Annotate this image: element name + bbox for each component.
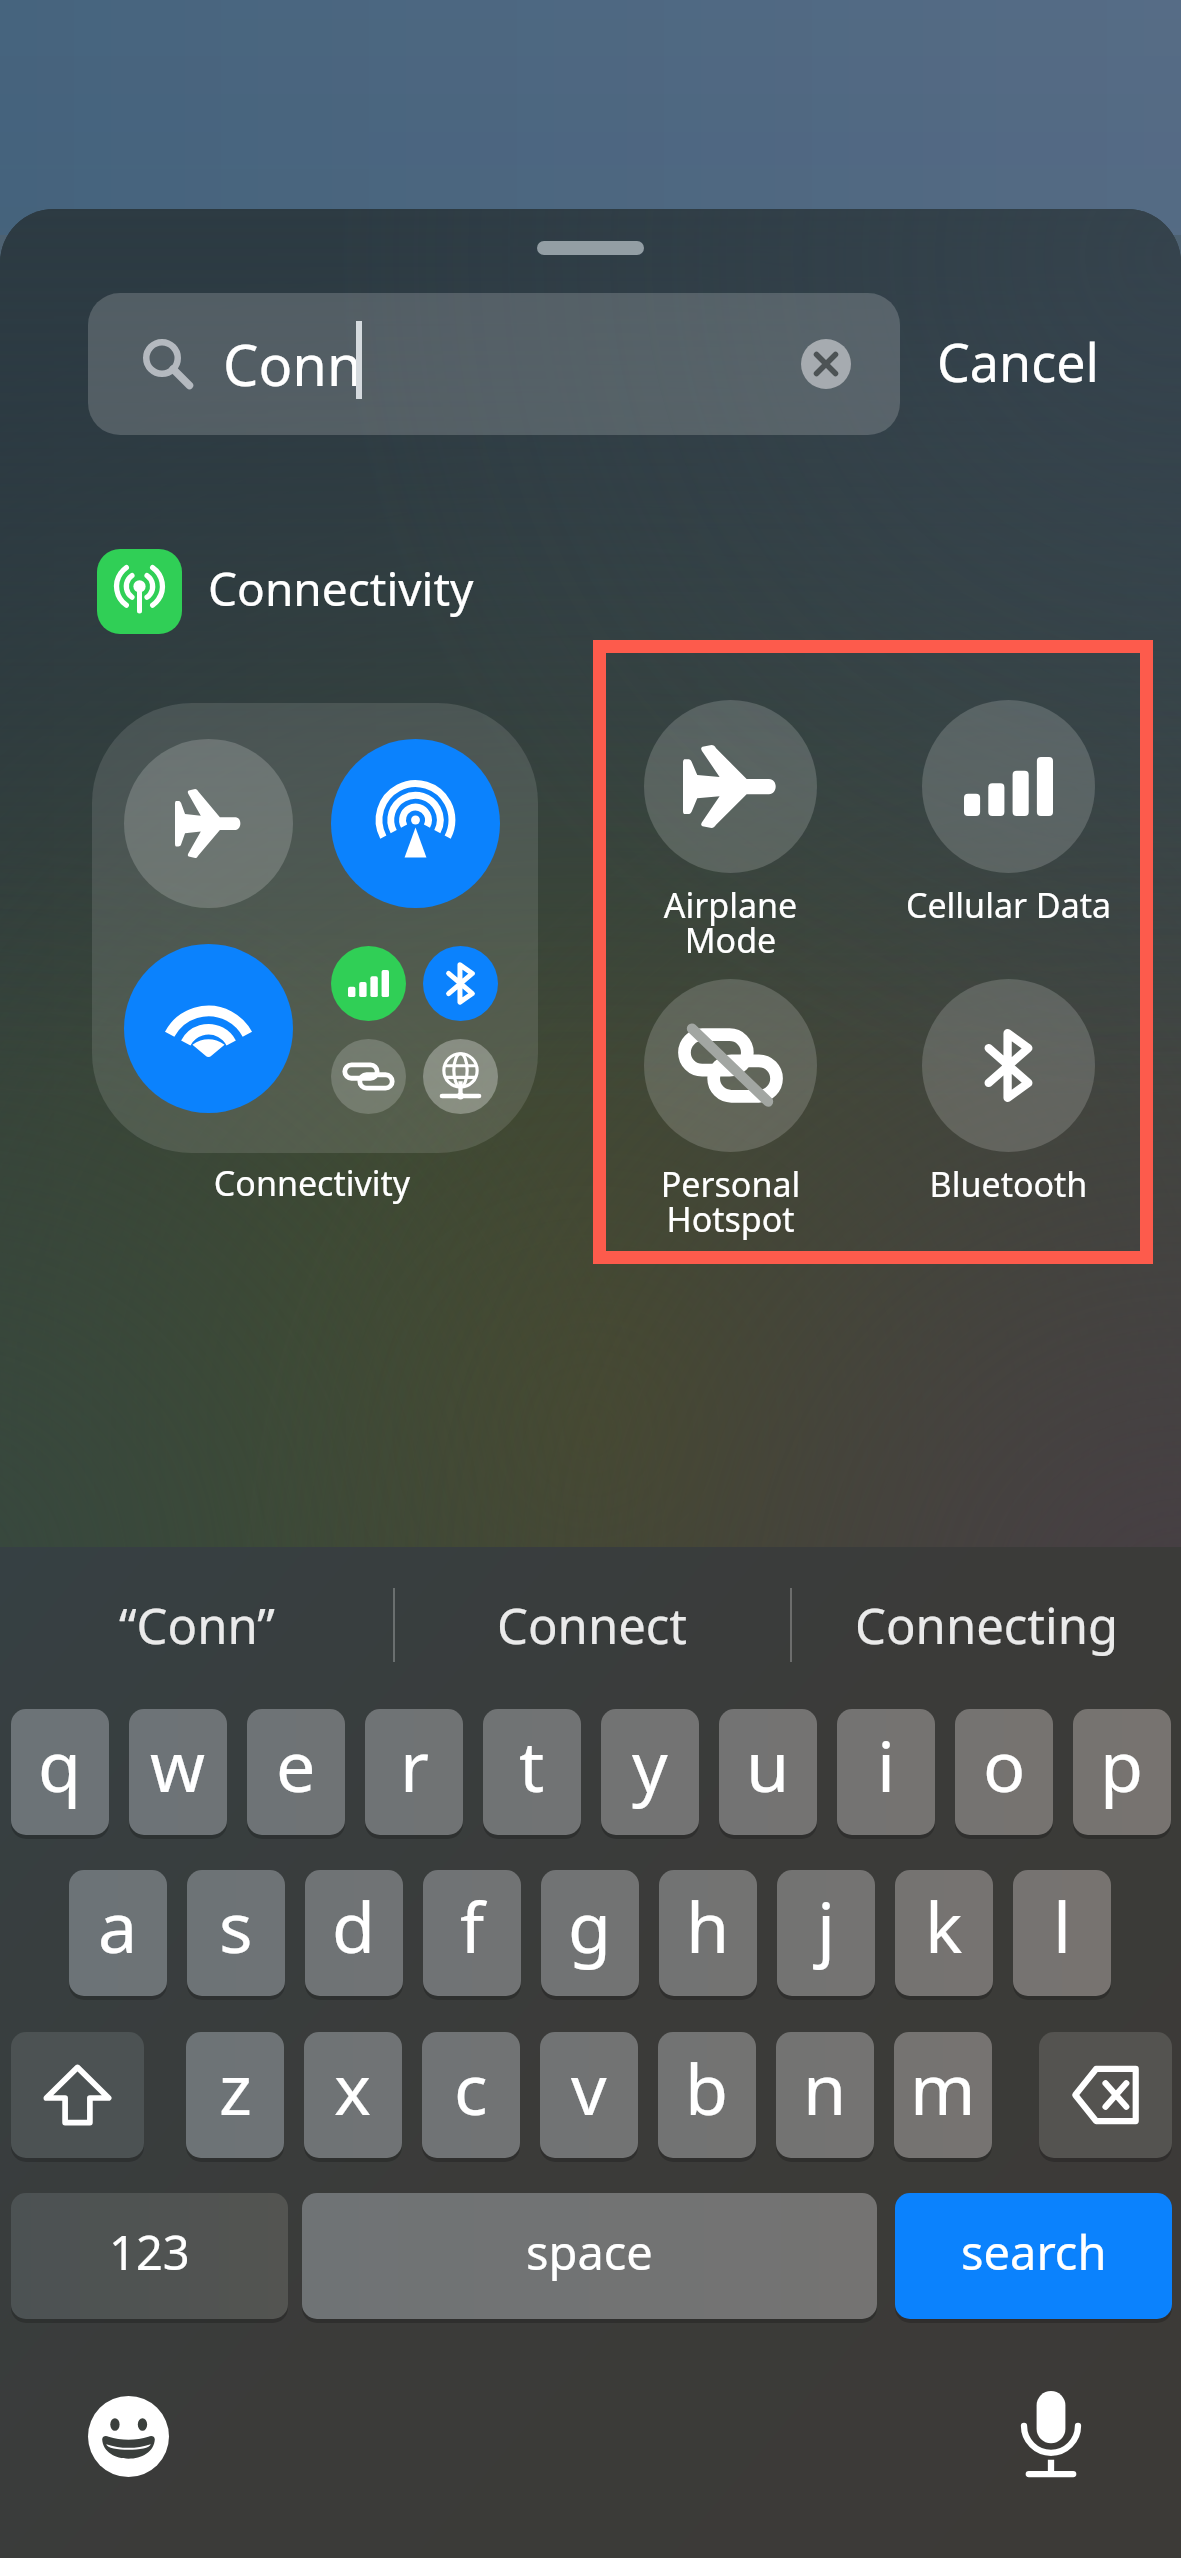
staticText: t	[519, 1717, 545, 1812]
button[interactable]: h	[659, 1870, 757, 1996]
staticText: Cellular Data	[862, 882, 1155, 928]
staticText: d	[332, 1878, 376, 1973]
button[interactable]: s	[187, 1870, 285, 1996]
button[interactable]: space	[302, 2193, 877, 2319]
button[interactable]: i	[837, 1709, 935, 1835]
button[interactable]: x	[304, 2032, 402, 2158]
staticText: Airplane Mode	[584, 882, 877, 963]
staticText: s	[219, 1878, 253, 1973]
button[interactable]: n	[776, 2032, 874, 2158]
button[interactable]: m	[894, 2032, 992, 2158]
staticText: m	[910, 2040, 976, 2135]
staticText: Bluetooth	[862, 1161, 1155, 1207]
staticText: 123	[109, 2220, 190, 2284]
button[interactable]: d	[305, 1870, 403, 1996]
staticText: x	[334, 2040, 372, 2135]
staticText: Conn	[223, 326, 362, 402]
button[interactable]: search	[895, 2193, 1172, 2319]
staticText: Connecting	[855, 1592, 1119, 1659]
button[interactable]: Conn	[88, 293, 900, 435]
button[interactable]: Emoji keyboard	[88, 2396, 169, 2477]
staticText: space	[526, 2220, 653, 2284]
button[interactable]: Dictation	[1021, 2391, 1081, 2478]
button[interactable]: “Conn”	[0, 1547, 393, 1703]
staticText: b	[685, 2040, 729, 2135]
staticText: f	[460, 1878, 485, 1973]
staticText: w	[150, 1717, 206, 1812]
staticText: Cancel	[937, 326, 1099, 397]
button[interactable]: f	[423, 1870, 521, 1996]
button[interactable]: b	[658, 2032, 756, 2158]
button[interactable]: p	[1073, 1709, 1171, 1835]
staticText: Personal Hotspot	[584, 1161, 877, 1242]
staticText: a	[98, 1878, 138, 1973]
staticText: z	[219, 2040, 252, 2135]
staticText: o	[983, 1717, 1026, 1812]
staticText: g	[568, 1878, 612, 1973]
button[interactable]: Connect	[395, 1547, 790, 1703]
staticText: search	[961, 2220, 1107, 2284]
button[interactable]: Airplane Mode	[584, 700, 877, 963]
button[interactable]: l	[1013, 1870, 1111, 1996]
staticText: q	[38, 1717, 82, 1812]
button[interactable]: Cellular Data	[862, 700, 1155, 928]
staticText: p	[1100, 1717, 1144, 1812]
button[interactable]: 123	[11, 2193, 288, 2319]
button[interactable]: y	[601, 1709, 699, 1835]
staticText: j	[817, 1878, 836, 1973]
staticText: r	[400, 1717, 429, 1812]
button[interactable]: e	[247, 1709, 345, 1835]
staticText: y	[632, 1717, 668, 1812]
button[interactable]: v	[540, 2032, 638, 2158]
staticText: h	[686, 1878, 730, 1973]
staticText: e	[276, 1717, 316, 1812]
button[interactable]: w	[129, 1709, 227, 1835]
button[interactable]: Backspace	[1039, 2032, 1172, 2158]
staticText: Connect	[497, 1592, 688, 1659]
staticText: “Conn”	[119, 1592, 275, 1659]
button[interactable]: j	[777, 1870, 875, 1996]
button[interactable]: Connecting	[792, 1547, 1181, 1703]
staticText: n	[803, 2040, 847, 2135]
button[interactable]: a	[69, 1870, 167, 1996]
staticText: c	[454, 2040, 488, 2135]
staticText: i	[877, 1717, 896, 1812]
button[interactable]: Clear text	[801, 339, 851, 389]
staticText: v	[571, 2040, 607, 2135]
staticText: k	[925, 1878, 963, 1973]
button[interactable]: z	[186, 2032, 284, 2158]
staticText: Connectivity	[208, 557, 474, 620]
button[interactable]: g	[541, 1870, 639, 1996]
staticText: Connectivity	[89, 1160, 535, 1206]
button[interactable]: q	[11, 1709, 109, 1835]
button[interactable]	[92, 703, 538, 1153]
button[interactable]: t	[483, 1709, 581, 1835]
staticText: u	[746, 1717, 790, 1812]
button[interactable]: Personal Hotspot	[584, 979, 877, 1242]
staticText: l	[1053, 1878, 1072, 1973]
button[interactable]: k	[895, 1870, 993, 1996]
button[interactable]: o	[955, 1709, 1053, 1835]
button[interactable]: r	[365, 1709, 463, 1835]
button[interactable]: Shift	[11, 2032, 144, 2158]
button[interactable]: c	[422, 2032, 520, 2158]
button[interactable]: u	[719, 1709, 817, 1835]
button[interactable]: Bluetooth	[862, 979, 1155, 1207]
button[interactable]: Cancel	[937, 326, 1099, 397]
